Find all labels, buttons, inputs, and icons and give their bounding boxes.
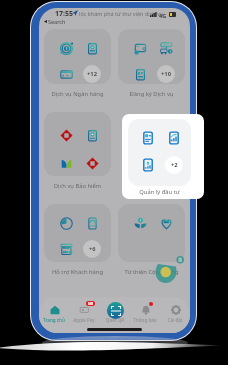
button[interactable]: +6	[83, 240, 101, 258]
staticText: +10	[161, 70, 171, 78]
button[interactable]: heart	[157, 214, 175, 232]
button[interactable]: clipcheck	[83, 39, 101, 57]
staticText: +2	[171, 161, 178, 169]
button[interactable]: diamond	[83, 154, 101, 172]
button[interactable]: +12	[83, 65, 101, 83]
other: Quét QR	[107, 302, 124, 319]
button[interactable]: phone	[83, 214, 101, 232]
staticText: Hỗ trợ Khách hàng	[44, 268, 111, 276]
staticText: Trang chủ	[39, 317, 69, 323]
button[interactable]: +2	[165, 156, 183, 174]
button[interactable]: doc1	[139, 129, 157, 147]
staticText: 17:55	[55, 9, 73, 19]
staticText: Apple Pay	[69, 317, 99, 323]
staticText: Đăng ký Dịch vụ	[118, 90, 185, 98]
staticText: Thông báo	[130, 317, 160, 323]
staticText: Cài đặt	[160, 317, 190, 323]
button[interactable]: Cài đặt	[160, 299, 190, 331]
button[interactable]: hands	[131, 214, 149, 232]
button[interactable]: clipshield	[83, 126, 101, 144]
staticText: Search	[48, 18, 66, 25]
staticText: Từ thiện Cộng đồng	[118, 268, 185, 276]
button[interactable]: pie	[44, 204, 111, 262]
button[interactable]: Thông báo	[130, 299, 160, 331]
staticText: Dịch vụ Bảo hiểm	[44, 182, 111, 190]
button[interactable]: wallet	[118, 29, 185, 84]
staticText: Quản lý đầu tư	[128, 188, 191, 196]
staticText: 4G	[159, 12, 167, 19]
staticText: +12	[87, 70, 97, 78]
staticText: +6	[89, 245, 96, 253]
button[interactable]: diamond	[44, 112, 111, 176]
button[interactable]: printer	[57, 240, 75, 258]
button[interactable]: bubble	[157, 39, 175, 57]
button[interactable]: MB	[69, 299, 99, 331]
button[interactable]: +10	[157, 65, 175, 83]
button[interactable]: orbit	[44, 29, 111, 84]
button[interactable]: orbit	[57, 39, 75, 57]
button[interactable]: upload	[139, 156, 157, 174]
staticText: MB	[88, 302, 94, 306]
button[interactable]: card	[57, 65, 75, 83]
button[interactable]: chart	[165, 129, 183, 147]
staticText: lộc khám phá từ thư viện dịch vụ	[79, 10, 164, 17]
button[interactable]: pie	[57, 214, 75, 232]
staticText: Dịch vụ Ngân hàng	[44, 90, 111, 98]
button[interactable]: wallet	[131, 39, 149, 57]
button[interactable]: book	[57, 154, 75, 172]
button[interactable]: docdollar	[131, 65, 149, 83]
button[interactable]: Trang chủ	[39, 299, 69, 331]
staticText: Quét QR	[100, 317, 130, 323]
button[interactable]: diamond	[57, 126, 75, 144]
button[interactable]: Quét QR	[100, 299, 130, 331]
button[interactable]: hands	[118, 204, 185, 262]
button[interactable]: doc1	[128, 119, 191, 186]
